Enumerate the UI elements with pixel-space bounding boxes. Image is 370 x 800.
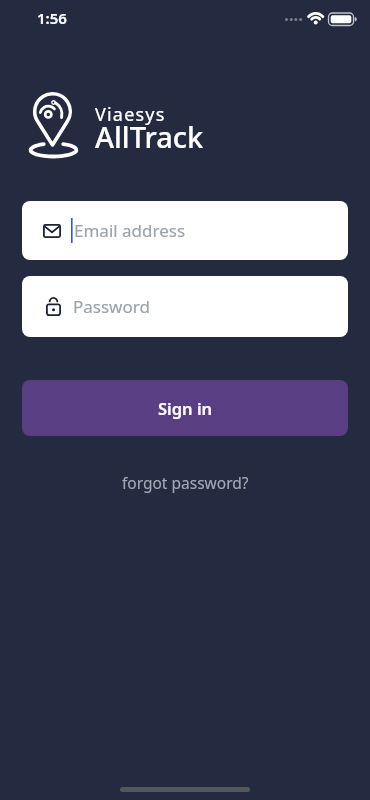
staticText: Sign in — [158, 397, 213, 419]
staticText: Email address — [74, 219, 186, 242]
staticText: AllTrack — [95, 117, 204, 156]
staticText: Password — [73, 295, 150, 318]
staticText: 1:56 — [37, 8, 67, 28]
button[interactable]: Password — [22, 276, 348, 337]
staticText: Viaesys — [95, 102, 166, 127]
staticText: forgot password? — [122, 472, 249, 493]
button[interactable]: Email address — [22, 201, 348, 260]
button[interactable]: Sign in — [22, 380, 348, 436]
button[interactable]: forgot password? — [114, 468, 257, 497]
